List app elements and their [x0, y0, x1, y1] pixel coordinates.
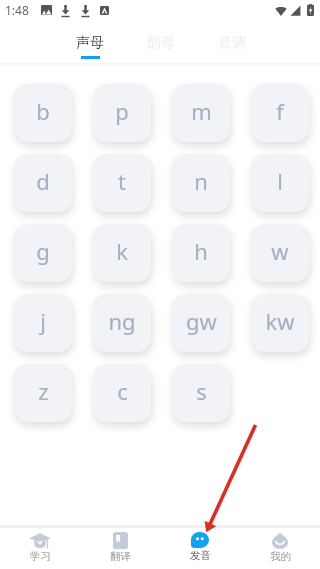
staticText: n [194, 166, 208, 196]
staticText: ng [108, 306, 136, 336]
button[interactable]: p [93, 84, 151, 142]
button[interactable]: w [251, 224, 309, 282]
staticText: h [194, 236, 208, 266]
button[interactable]: 声母 [54, 24, 125, 66]
staticText: p [115, 96, 129, 126]
staticText: m [191, 96, 212, 126]
staticText: w [271, 236, 289, 266]
button[interactable]: t [93, 154, 151, 212]
staticText: l [277, 166, 283, 196]
button[interactable]: 翻译 [80, 528, 160, 569]
button[interactable]: 学习 [0, 528, 80, 569]
staticText: 发音 [190, 549, 211, 562]
button[interactable]: j [14, 294, 72, 352]
button[interactable]: z [14, 364, 72, 422]
button[interactable]: m [172, 84, 230, 142]
button[interactable]: f [251, 84, 309, 142]
button[interactable]: d [14, 154, 72, 212]
button[interactable]: ng [93, 294, 151, 352]
staticText: 我的 [270, 550, 291, 563]
button[interactable]: 韵母 [125, 24, 196, 66]
staticText: g [36, 236, 50, 266]
button[interactable]: h [172, 224, 230, 282]
button[interactable]: 发音 [160, 528, 240, 569]
button[interactable]: kw [251, 294, 309, 352]
staticText: 1:48 [5, 2, 29, 18]
staticText: 学习 [30, 550, 51, 563]
staticText: j [40, 306, 46, 336]
staticText: c [117, 376, 128, 406]
staticText: k [116, 236, 128, 266]
staticText: t [118, 166, 126, 196]
button[interactable]: s [172, 364, 230, 422]
button[interactable]: gw [172, 294, 230, 352]
staticText: 韵母 [147, 34, 175, 52]
button[interactable]: c [93, 364, 151, 422]
staticText: b [36, 96, 50, 126]
staticText: gw [186, 306, 217, 336]
staticText: f [276, 96, 284, 126]
button[interactable]: g [14, 224, 72, 282]
button[interactable]: l [251, 154, 309, 212]
staticText: d [36, 166, 50, 196]
button[interactable]: b [14, 84, 72, 142]
staticText: 翻译 [110, 550, 131, 563]
button[interactable]: 我的 [240, 528, 320, 569]
button[interactable]: k [93, 224, 151, 282]
staticText: z [38, 376, 49, 406]
staticText: 声母 [76, 34, 104, 52]
staticText: kw [265, 306, 295, 336]
staticText: s [196, 376, 207, 406]
staticText: 音调 [218, 34, 246, 52]
button[interactable]: n [172, 154, 230, 212]
button[interactable]: 音调 [196, 24, 267, 66]
